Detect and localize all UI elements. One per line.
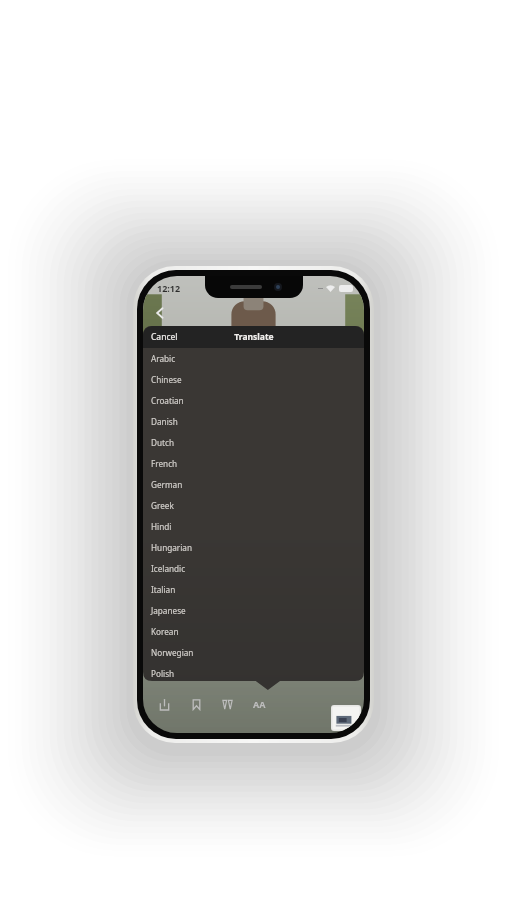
staticText: Chinese — [151, 374, 182, 385]
staticText: Korean — [151, 626, 179, 637]
button[interactable]: French — [143, 453, 364, 474]
staticText: French — [151, 458, 178, 469]
button[interactable]: Icelandic — [143, 558, 364, 579]
button[interactable]: Bookmarks — [186, 694, 206, 714]
button[interactable]: Croatian — [143, 390, 364, 411]
button[interactable]: Arabic — [143, 348, 364, 369]
button[interactable]: Hindi — [143, 516, 364, 537]
staticText: Translate — [234, 331, 274, 343]
button[interactable]: Greek — [143, 495, 364, 516]
button[interactable]: Hungarian — [143, 537, 364, 558]
button[interactable]: Tabs — [217, 694, 237, 714]
button[interactable]: Italian — [143, 579, 364, 600]
staticText: Norwegian — [151, 647, 194, 658]
button[interactable]: Korean — [143, 621, 364, 642]
button[interactable]: Cancel — [143, 326, 197, 348]
button[interactable]: Danish — [143, 411, 364, 432]
staticText: Croatian — [151, 395, 184, 406]
staticText: German — [151, 479, 183, 490]
button[interactable]: Tab preview — [331, 705, 361, 731]
button[interactable]: Share — [154, 694, 174, 714]
staticText: Hungarian — [151, 542, 192, 553]
button[interactable]: Japanese — [143, 600, 364, 621]
staticText: Japanese — [151, 605, 186, 616]
staticText: Dutch — [151, 437, 174, 448]
button[interactable]: Norwegian — [143, 642, 364, 663]
button[interactable]: Chinese — [143, 369, 364, 390]
staticText: Greek — [151, 500, 174, 511]
staticText: Polish — [151, 668, 175, 679]
button[interactable]: Polish — [143, 663, 364, 684]
staticText: Icelandic — [151, 563, 186, 574]
staticText: 12:12 — [157, 282, 181, 294]
staticText: Italian — [151, 584, 176, 595]
button[interactable]: AA — [249, 694, 269, 714]
staticText: Danish — [151, 416, 178, 427]
staticText: Arabic — [151, 353, 176, 364]
staticText: Cancel — [151, 331, 178, 343]
button[interactable]: Dutch — [143, 432, 364, 453]
button[interactable]: Back — [147, 300, 173, 326]
button[interactable]: German — [143, 474, 364, 495]
staticText: Hindi — [151, 521, 172, 532]
staticText: AA — [253, 698, 266, 710]
